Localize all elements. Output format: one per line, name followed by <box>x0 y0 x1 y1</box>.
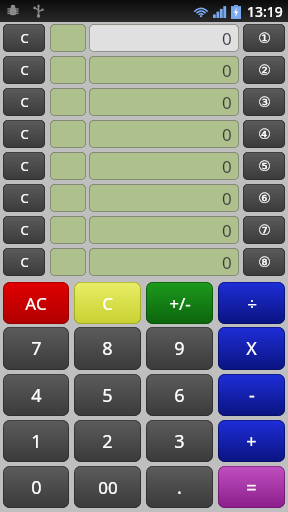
staticText: 6 <box>174 383 185 408</box>
staticText: ÷ <box>247 292 257 315</box>
button[interactable]: C <box>3 248 45 276</box>
staticText: 13:19 <box>247 2 283 21</box>
button[interactable]: 00 <box>74 466 141 508</box>
staticText: X <box>246 336 257 361</box>
button[interactable]: Memory slot 7 <box>243 216 285 244</box>
button[interactable]: C <box>3 24 45 52</box>
button[interactable]: Memory slot 4 <box>243 120 285 148</box>
button[interactable]: Memory 3 <box>50 88 86 116</box>
staticText: 0 <box>222 187 232 210</box>
staticText: C <box>20 125 29 143</box>
button[interactable]: 5 <box>74 374 141 416</box>
staticText: C <box>20 189 29 207</box>
button[interactable]: 8 <box>74 327 141 370</box>
staticText: 8 <box>102 336 113 361</box>
staticText: AC <box>25 292 47 315</box>
button[interactable]: 2 <box>74 420 141 462</box>
button[interactable]: = <box>218 466 285 508</box>
button[interactable]: Display 5 <box>89 152 239 180</box>
staticText: C <box>20 221 29 239</box>
button[interactable]: - <box>218 374 285 416</box>
staticText: 0 <box>222 59 232 82</box>
button[interactable]: . <box>146 466 213 508</box>
button[interactable]: C <box>3 152 45 180</box>
button[interactable]: 7 <box>3 327 69 370</box>
button[interactable]: 4 <box>3 374 69 416</box>
button[interactable]: Memory slot 3 <box>243 88 285 116</box>
button[interactable]: 9 <box>146 327 213 370</box>
staticText: 0 <box>222 91 232 114</box>
staticText: 3 <box>174 429 185 454</box>
staticText: = <box>246 475 257 500</box>
staticText: ⑦ <box>258 222 271 238</box>
button[interactable]: Memory 2 <box>50 56 86 84</box>
staticText: 5 <box>102 383 113 408</box>
button[interactable]: Display 3 <box>89 88 239 116</box>
staticText: 1 <box>31 429 42 454</box>
button[interactable]: Memory 4 <box>50 120 86 148</box>
staticText: 4 <box>31 383 42 408</box>
button[interactable]: + <box>218 420 285 462</box>
staticText: ⑤ <box>258 158 271 174</box>
button[interactable]: 0 <box>3 466 69 508</box>
staticText: 0 <box>222 123 232 146</box>
button[interactable]: Memory slot 2 <box>243 56 285 84</box>
button[interactable]: Memory slot 1 <box>243 24 285 52</box>
staticText: ③ <box>258 94 271 110</box>
staticText: C <box>20 61 29 79</box>
button[interactable]: Display 6 <box>89 184 239 212</box>
staticText: 00 <box>98 476 118 499</box>
staticText: 7 <box>31 336 42 361</box>
button[interactable]: Memory 6 <box>50 184 86 212</box>
button[interactable]: Memory slot 6 <box>243 184 285 212</box>
button[interactable]: Display 1 <box>89 24 239 52</box>
staticText: ④ <box>258 126 271 142</box>
staticText: 0 <box>222 27 232 50</box>
button[interactable]: Memory 8 <box>50 248 86 276</box>
staticText: 0 <box>222 219 232 242</box>
staticText: 2 <box>102 429 113 454</box>
button[interactable]: Memory 7 <box>50 216 86 244</box>
button[interactable]: 3 <box>146 420 213 462</box>
button[interactable]: ÷ <box>218 282 285 324</box>
staticText: 0 <box>31 475 42 500</box>
staticText: + <box>246 429 257 454</box>
staticText: C <box>20 29 29 47</box>
button[interactable]: Display 4 <box>89 120 239 148</box>
staticText: C <box>20 93 29 111</box>
button[interactable]: Memory 1 <box>50 24 86 52</box>
button[interactable]: Display 7 <box>89 216 239 244</box>
staticText: 0 <box>222 251 232 274</box>
button[interactable]: +/- <box>146 282 213 324</box>
button[interactable]: 1 <box>3 420 69 462</box>
button[interactable]: Memory 5 <box>50 152 86 180</box>
staticText: C <box>102 292 113 315</box>
staticText: - <box>249 383 255 408</box>
button[interactable]: C <box>3 56 45 84</box>
staticText: ⑥ <box>258 190 271 206</box>
button[interactable]: C <box>74 282 141 324</box>
button[interactable]: 6 <box>146 374 213 416</box>
button[interactable]: Display 8 <box>89 248 239 276</box>
staticText: ① <box>258 30 271 46</box>
staticText: . <box>177 475 182 500</box>
button[interactable]: Memory slot 5 <box>243 152 285 180</box>
button[interactable]: X <box>218 327 285 370</box>
staticText: C <box>20 157 29 175</box>
button[interactable]: AC <box>3 282 69 324</box>
button[interactable]: Memory slot 8 <box>243 248 285 276</box>
button[interactable]: Display 2 <box>89 56 239 84</box>
staticText: ② <box>258 62 271 78</box>
staticText: 0 <box>222 155 232 178</box>
staticText: 9 <box>174 336 185 361</box>
staticText: +/- <box>169 292 191 315</box>
staticText: ⑧ <box>258 254 271 270</box>
button[interactable]: C <box>3 120 45 148</box>
button[interactable]: C <box>3 184 45 212</box>
button[interactable]: C <box>3 216 45 244</box>
staticText: C <box>20 253 29 271</box>
button[interactable]: C <box>3 88 45 116</box>
